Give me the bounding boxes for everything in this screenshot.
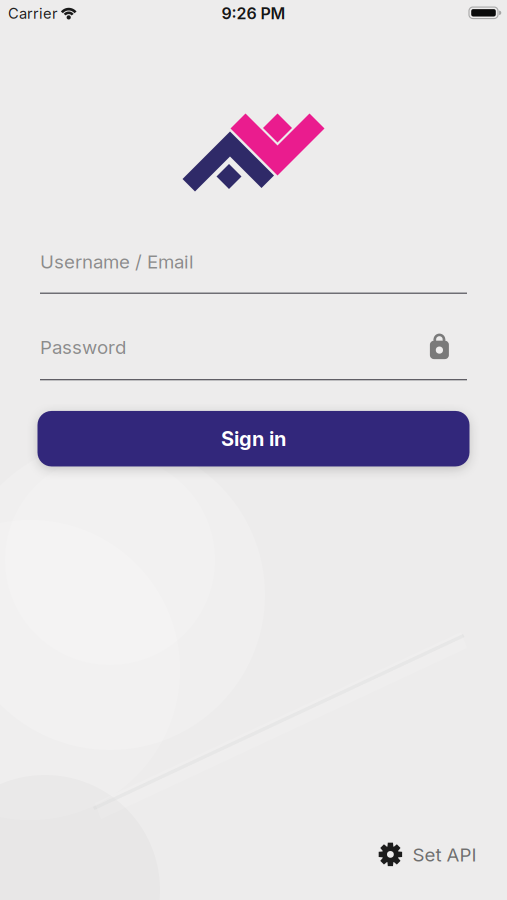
staticText: Set API <box>412 844 476 866</box>
button[interactable]: Set API <box>375 839 479 869</box>
staticText: 9:26 PM <box>221 4 285 23</box>
staticText: Carrier <box>8 5 58 22</box>
button[interactable]: Username / Email <box>40 248 467 294</box>
staticText: Username / Email <box>40 251 194 273</box>
staticText: Sign in <box>221 427 286 450</box>
button[interactable]: Password <box>40 332 467 380</box>
button[interactable]: Sign in <box>37 411 469 466</box>
staticText: Password <box>40 336 126 358</box>
